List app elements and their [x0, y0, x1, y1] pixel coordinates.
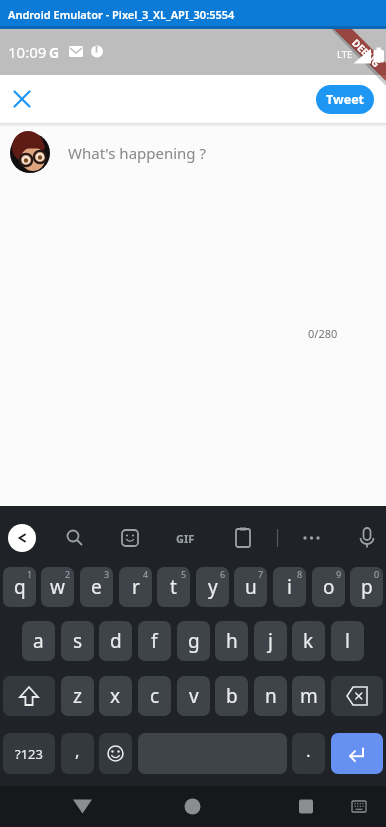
staticText: 5 — [181, 568, 187, 580]
staticText: v — [189, 683, 199, 709]
staticText: n — [265, 683, 277, 709]
button[interactable]: , — [61, 733, 94, 774]
button[interactable]: f — [138, 621, 171, 661]
button[interactable]: . — [292, 733, 325, 774]
staticText: LTE — [337, 48, 353, 61]
staticText: o — [323, 574, 335, 600]
button[interactable]: What's happening ? — [10, 133, 207, 173]
staticText: z — [73, 683, 82, 709]
staticText: x — [110, 683, 121, 709]
button[interactable] — [6, 83, 38, 115]
button[interactable]: o — [312, 567, 345, 607]
staticText: y — [208, 574, 218, 600]
staticText: What's happening ? — [68, 143, 207, 163]
button[interactable] — [331, 676, 383, 716]
staticText: d — [110, 628, 122, 654]
button[interactable] — [63, 786, 103, 827]
button[interactable]: a — [22, 621, 55, 661]
staticText: p — [361, 574, 373, 600]
staticText: Tweet — [326, 91, 365, 108]
staticText: 0 — [374, 568, 380, 580]
button[interactable]: d — [99, 621, 132, 661]
staticText: j — [268, 628, 273, 654]
button[interactable] — [8, 524, 36, 552]
button[interactable]: e — [80, 567, 113, 607]
staticText: Android Emulator - Pixel_3_XL_API_30:555… — [8, 7, 235, 22]
button[interactable]: Tweet — [316, 85, 374, 114]
button[interactable]: z — [61, 676, 94, 716]
button[interactable] — [3, 676, 55, 716]
staticText: u — [245, 574, 257, 600]
button[interactable]: y — [196, 567, 229, 607]
staticText: 6 — [220, 568, 226, 580]
staticText: a — [33, 628, 44, 654]
button[interactable]: r — [119, 567, 152, 607]
button[interactable]: j — [254, 621, 287, 661]
button[interactable]: i — [273, 567, 306, 607]
button[interactable] — [331, 733, 383, 774]
staticText: h — [226, 628, 238, 654]
button[interactable]: g — [177, 621, 210, 661]
staticText: 3 — [104, 568, 110, 580]
staticText: 7 — [258, 568, 264, 580]
button[interactable] — [99, 733, 132, 774]
staticText: DEBUG — [349, 36, 384, 70]
staticText: r — [132, 574, 140, 600]
staticText: m — [300, 683, 318, 709]
staticText: s — [73, 628, 83, 654]
staticText: e — [91, 574, 102, 600]
button[interactable]: u — [234, 567, 267, 607]
staticText: i — [287, 574, 292, 600]
button[interactable]: x — [99, 676, 132, 716]
button[interactable]: m — [292, 676, 325, 716]
staticText: f — [151, 628, 158, 654]
staticText: g — [188, 628, 200, 654]
button[interactable]: h — [215, 621, 248, 661]
staticText: , — [75, 739, 80, 762]
button[interactable]: t — [157, 567, 190, 607]
staticText: 4 — [143, 568, 149, 580]
button[interactable]: b — [215, 676, 248, 716]
button[interactable]: w — [41, 567, 74, 607]
staticText: 2 — [65, 568, 71, 580]
staticText: b — [226, 683, 238, 709]
staticText: t — [170, 574, 177, 600]
staticText: k — [303, 628, 314, 654]
button[interactable]: v — [177, 676, 210, 716]
staticText: w — [50, 574, 65, 600]
staticText: l — [345, 628, 350, 654]
staticText: q — [14, 574, 26, 600]
staticText: GIF — [176, 531, 195, 546]
staticText: ?123 — [15, 745, 43, 763]
button[interactable]: k — [292, 621, 325, 661]
staticText: c — [150, 683, 160, 709]
staticText: 9 — [336, 568, 342, 580]
staticText: 0/280 — [308, 326, 338, 341]
button[interactable]: l — [331, 621, 364, 661]
button[interactable] — [286, 786, 326, 827]
button[interactable]: s — [61, 621, 94, 661]
staticText: . — [306, 739, 311, 762]
staticText: G — [49, 43, 60, 62]
button[interactable]: p — [350, 567, 383, 607]
button[interactable]: n — [254, 676, 287, 716]
staticText: 8 — [297, 568, 303, 580]
button[interactable]: c — [138, 676, 171, 716]
button[interactable] — [172, 786, 212, 827]
staticText: 1 — [27, 568, 33, 580]
staticText: 10:09 — [8, 42, 47, 62]
button[interactable]: q — [3, 567, 36, 607]
button[interactable]: ?123 — [3, 733, 55, 774]
